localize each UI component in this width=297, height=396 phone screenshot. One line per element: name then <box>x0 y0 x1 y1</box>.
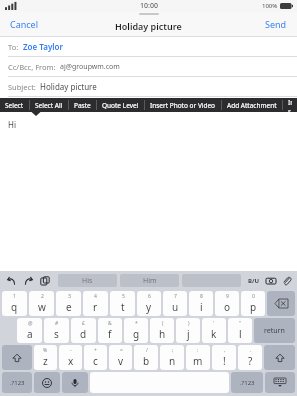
staticText: 10:00 <box>140 1 158 11</box>
staticText: l <box>239 327 242 341</box>
staticText: j <box>187 327 190 341</box>
button[interactable]: ) <box>176 318 200 343</box>
button[interactable]: ' <box>202 318 226 343</box>
staticText: , <box>224 347 226 354</box>
button[interactable]: Paste <box>38 274 52 288</box>
staticText: Holiday picture <box>115 20 182 32</box>
button[interactable]: £ <box>71 318 96 343</box>
staticText: return <box>264 326 285 336</box>
button[interactable]: 6 <box>137 291 161 316</box>
button[interactable]: Cancel <box>0 14 49 34</box>
button[interactable]: * <box>124 318 148 343</box>
button[interactable]: # <box>44 318 69 343</box>
staticText: i <box>200 300 203 314</box>
button[interactable]: Dictation <box>62 372 88 393</box>
button[interactable]: Shift <box>264 345 295 370</box>
staticText: 1 <box>13 293 16 300</box>
button[interactable]: Camera <box>265 275 277 287</box>
staticText: Add Attachment <box>227 101 277 110</box>
button[interactable]: , <box>212 345 236 370</box>
staticText: 100% <box>262 2 278 10</box>
staticText: h <box>159 327 166 341</box>
button[interactable]: ; <box>160 345 184 370</box>
staticText: Subject: <box>8 82 36 92</box>
button[interactable]: & <box>98 318 122 343</box>
staticText: * <box>135 320 138 327</box>
staticText: # <box>55 320 59 327</box>
button[interactable]: / <box>134 345 158 370</box>
button[interactable]: Backspace <box>267 291 295 316</box>
staticText: o <box>224 300 231 314</box>
button[interactable]: .?123 <box>231 372 263 393</box>
button[interactable]: Cc/Bcc, From: <box>0 57 297 76</box>
button[interactable]: 1 <box>2 291 27 316</box>
button[interactable]: 7 <box>163 291 187 316</box>
staticText: ( <box>162 320 164 327</box>
button[interactable]: Attach <box>281 275 293 287</box>
staticText: 5 <box>122 293 125 300</box>
staticText: His <box>82 276 93 286</box>
staticText: ' <box>213 320 215 327</box>
button[interactable]: : <box>186 345 210 370</box>
button[interactable]: 4 <box>83 291 108 316</box>
button[interactable]: . <box>238 345 262 370</box>
staticText: Cc/Bcc, From: <box>8 62 56 72</box>
staticText: Insert Photo or Video <box>150 101 216 110</box>
button[interactable]: 2 <box>29 291 54 316</box>
staticText: z <box>43 354 48 368</box>
button[interactable]: = <box>109 345 132 370</box>
staticText: Paste <box>74 101 91 110</box>
staticText: Him <box>143 276 157 286</box>
button[interactable]: Insert Photo or Video <box>145 98 221 112</box>
button[interactable]: Him <box>120 274 179 287</box>
button[interactable]: Shift <box>2 345 32 370</box>
button[interactable]: @ <box>17 318 42 343</box>
button[interactable]: 9 <box>215 291 239 316</box>
button[interactable]: Paste <box>69 98 96 112</box>
button[interactable]: His <box>58 274 117 287</box>
staticText: r <box>93 300 98 314</box>
button[interactable]: 5 <box>110 291 135 316</box>
staticText: .?123 <box>240 379 255 387</box>
staticText: + <box>94 347 97 354</box>
button[interactable]: .?123 <box>2 372 32 393</box>
button[interactable]: " <box>228 318 252 343</box>
button[interactable]: Select <box>0 98 29 112</box>
staticText: " <box>239 320 242 327</box>
staticText: : <box>197 347 199 354</box>
button[interactable]: Subject: <box>0 77 297 96</box>
staticText: . <box>250 347 252 354</box>
button[interactable]: Add Attachment <box>222 98 282 112</box>
button[interactable]: 0 <box>241 291 265 316</box>
button[interactable]: Select All <box>30 98 68 112</box>
button[interactable]: 3 <box>56 291 81 316</box>
button[interactable]: Undo <box>4 274 18 288</box>
button[interactable]: To: <box>0 37 297 56</box>
staticText: Cancel <box>10 18 39 30</box>
staticText: 2 <box>41 293 44 300</box>
button[interactable]: Hide keyboard <box>265 372 295 393</box>
button[interactable]: 8 <box>189 291 213 316</box>
button[interactable]: Send <box>255 14 297 34</box>
button[interactable]: Insert Drawing <box>283 98 297 112</box>
staticText: = <box>120 347 123 354</box>
staticText: 9 <box>226 293 229 300</box>
button[interactable]: Emoji <box>34 372 60 393</box>
staticText: d <box>80 327 87 341</box>
staticText: n <box>169 354 176 368</box>
staticText: ! <box>223 354 226 368</box>
staticText: To: <box>8 42 19 52</box>
staticText: Insert Drawing <box>288 98 292 112</box>
staticText: ; <box>172 347 174 354</box>
button[interactable]: return <box>254 318 295 343</box>
button[interactable]: Redo <box>21 274 35 288</box>
button[interactable]: + <box>84 345 107 370</box>
staticText: 0 <box>252 293 255 300</box>
button[interactable]: B/U <box>247 277 261 285</box>
button[interactable]: Quote Level <box>97 98 144 112</box>
button[interactable]: - <box>59 345 82 370</box>
button[interactable]: % <box>34 345 57 370</box>
button[interactable]: ( <box>150 318 174 343</box>
